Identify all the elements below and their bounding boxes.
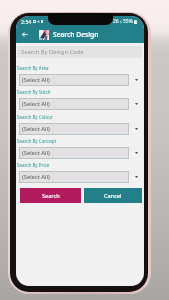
button[interactable]: Expand Search By Area xyxy=(129,74,143,86)
button[interactable]: Cancel xyxy=(84,188,142,203)
staticText: (Select All) xyxy=(22,173,50,181)
button[interactable]: Expand Search By Price xyxy=(129,171,143,183)
staticText: 2:54 xyxy=(21,18,32,25)
button[interactable]: Expand Search By Concept xyxy=(129,147,143,159)
staticText: Search xyxy=(42,192,60,200)
staticText: (Select All) xyxy=(22,76,50,84)
staticText: (Select All) xyxy=(22,149,50,157)
button[interactable]: Search xyxy=(20,188,81,203)
button[interactable]: Back xyxy=(16,26,34,43)
staticText: Search By Price xyxy=(17,162,50,168)
button[interactable]: (Select All) xyxy=(19,147,129,159)
staticText: (Select All) xyxy=(22,100,50,108)
button[interactable]: Expand Search By Stitch xyxy=(129,98,143,110)
staticText: Search By Stitch xyxy=(17,89,51,95)
staticText: Cancel xyxy=(104,192,122,200)
button[interactable]: (Select All) xyxy=(19,98,129,110)
button[interactable]: Search By Design Code xyxy=(17,46,142,58)
staticText: Search Design xyxy=(53,30,99,39)
staticText: Search By Design Code xyxy=(21,48,84,56)
button[interactable]: (Select All) xyxy=(19,171,129,183)
button[interactable]: Expand Search By Colour xyxy=(129,123,143,135)
button[interactable]: (Select All) xyxy=(19,123,129,135)
staticText: Search By Colour xyxy=(17,114,53,120)
staticText: 26 xyxy=(113,18,119,25)
button[interactable]: (Select All) xyxy=(19,74,129,86)
staticText: Search By Area xyxy=(17,65,49,71)
staticText: 55% xyxy=(123,18,133,25)
staticText: (Select All) xyxy=(22,125,50,133)
staticText: Search By Concept xyxy=(17,138,57,144)
